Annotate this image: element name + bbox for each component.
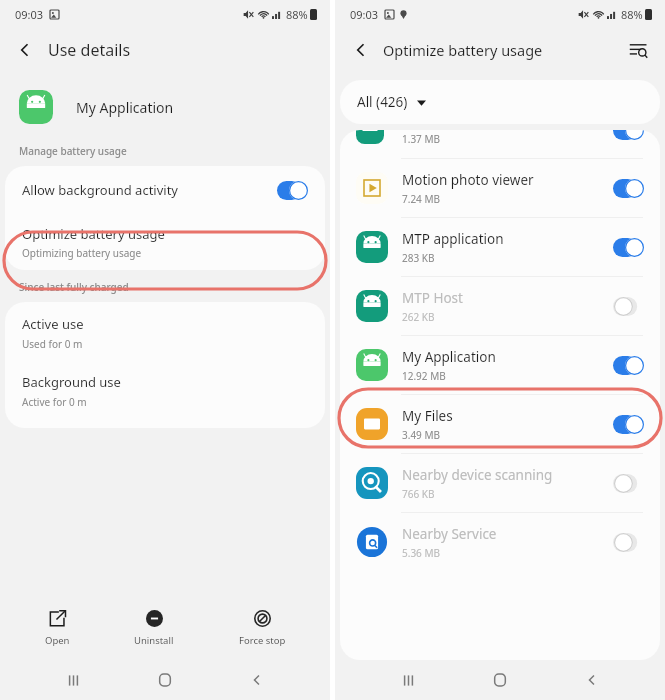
button[interactable]: Back	[573, 661, 611, 699]
staticText: Force stop	[239, 634, 286, 647]
staticText: Since last fully charged	[19, 280, 129, 294]
staticText: 3.49 MB	[402, 428, 441, 442]
staticText: Background use	[22, 373, 121, 391]
staticText: Active use	[22, 315, 84, 333]
other: Recents	[66, 673, 81, 688]
staticText: 09:03	[350, 7, 379, 22]
staticText: My Application	[76, 98, 174, 117]
staticText: Nearby Service	[402, 525, 497, 543]
staticText: Motion photo viewer	[402, 171, 534, 189]
staticText: 09:03	[15, 7, 44, 22]
staticText: Allow background activity	[22, 181, 277, 199]
button[interactable]: Home	[481, 661, 519, 699]
button[interactable]: Background use	[5, 360, 325, 418]
button[interactable]: My Files	[340, 395, 660, 453]
staticText: 766 KB	[402, 487, 435, 501]
staticText: 12.92 MB	[402, 369, 446, 383]
staticText: MTP application	[402, 230, 504, 248]
other: Force stop	[254, 610, 271, 627]
staticText: Optimizing battery usage	[22, 246, 142, 260]
button[interactable]	[613, 179, 644, 198]
staticText: 1.37 MB	[402, 132, 441, 144]
button[interactable]: My Application	[340, 336, 660, 394]
button[interactable]: MTP application	[340, 218, 660, 276]
staticText: 7.24 MB	[402, 192, 441, 206]
staticText: Optimize battery usage	[22, 225, 165, 243]
other: Home	[158, 673, 172, 687]
other: Search and sort	[629, 41, 648, 60]
staticText: 88%	[621, 7, 643, 22]
other: Recents	[401, 673, 416, 688]
other: Home	[493, 673, 507, 687]
staticText: Uninstall	[134, 634, 174, 647]
other: Back	[352, 41, 370, 59]
staticText: 5.36 MB	[402, 546, 441, 560]
staticText: My Files	[402, 407, 453, 425]
other: Uninstall	[146, 610, 163, 627]
staticText: Manage battery usage	[19, 144, 127, 158]
staticText: MTP Host	[402, 289, 463, 307]
other: Open	[49, 610, 66, 627]
other: Back	[16, 41, 34, 59]
staticText: Optimize battery usage	[383, 40, 621, 60]
button[interactable]: Active use	[5, 302, 325, 360]
button[interactable]: Nearby device scanning	[340, 454, 660, 512]
button[interactable]	[613, 533, 644, 552]
staticText: 262 KB	[402, 310, 435, 324]
staticText: 283 KB	[402, 251, 435, 265]
staticText: Used for 0 m	[22, 337, 83, 351]
button[interactable]: Motion photo viewer	[340, 159, 660, 217]
button[interactable]	[277, 181, 308, 200]
button[interactable]	[613, 238, 644, 257]
other: Back	[250, 673, 264, 687]
staticText: My Application	[402, 348, 496, 366]
button[interactable]	[613, 297, 644, 316]
staticText: All (426)	[357, 93, 408, 111]
button[interactable]: Force stop	[219, 605, 306, 652]
button[interactable]: Allow background activity	[5, 166, 325, 214]
staticText: Nearby device scanning	[402, 466, 553, 484]
staticText: 88%	[286, 7, 308, 22]
button[interactable]: Back	[0, 28, 330, 72]
button[interactable]: Back	[349, 38, 373, 62]
button[interactable]: Recents	[54, 661, 92, 699]
button[interactable]	[613, 415, 644, 434]
button[interactable]: Search and sort	[621, 33, 655, 67]
button[interactable]: Nearby Service	[340, 513, 660, 571]
button[interactable]: Optimize battery usage	[5, 214, 325, 270]
button[interactable]: Recents	[389, 661, 427, 699]
button[interactable]: Uninstall	[114, 605, 194, 652]
button[interactable]: 1.37 MB	[340, 130, 660, 158]
button[interactable]	[613, 130, 644, 140]
button[interactable]: Back	[238, 661, 276, 699]
staticText: Open	[45, 634, 70, 647]
button[interactable]	[613, 356, 644, 375]
other: Back	[585, 673, 599, 687]
staticText: Use details	[48, 39, 131, 61]
button[interactable]: Home	[146, 661, 184, 699]
button[interactable]: MTP Host	[340, 277, 660, 335]
button[interactable]	[613, 474, 644, 493]
button[interactable]: Open	[25, 605, 90, 652]
button[interactable]: All (426)	[340, 80, 660, 124]
staticText: Active for 0 m	[22, 395, 87, 409]
